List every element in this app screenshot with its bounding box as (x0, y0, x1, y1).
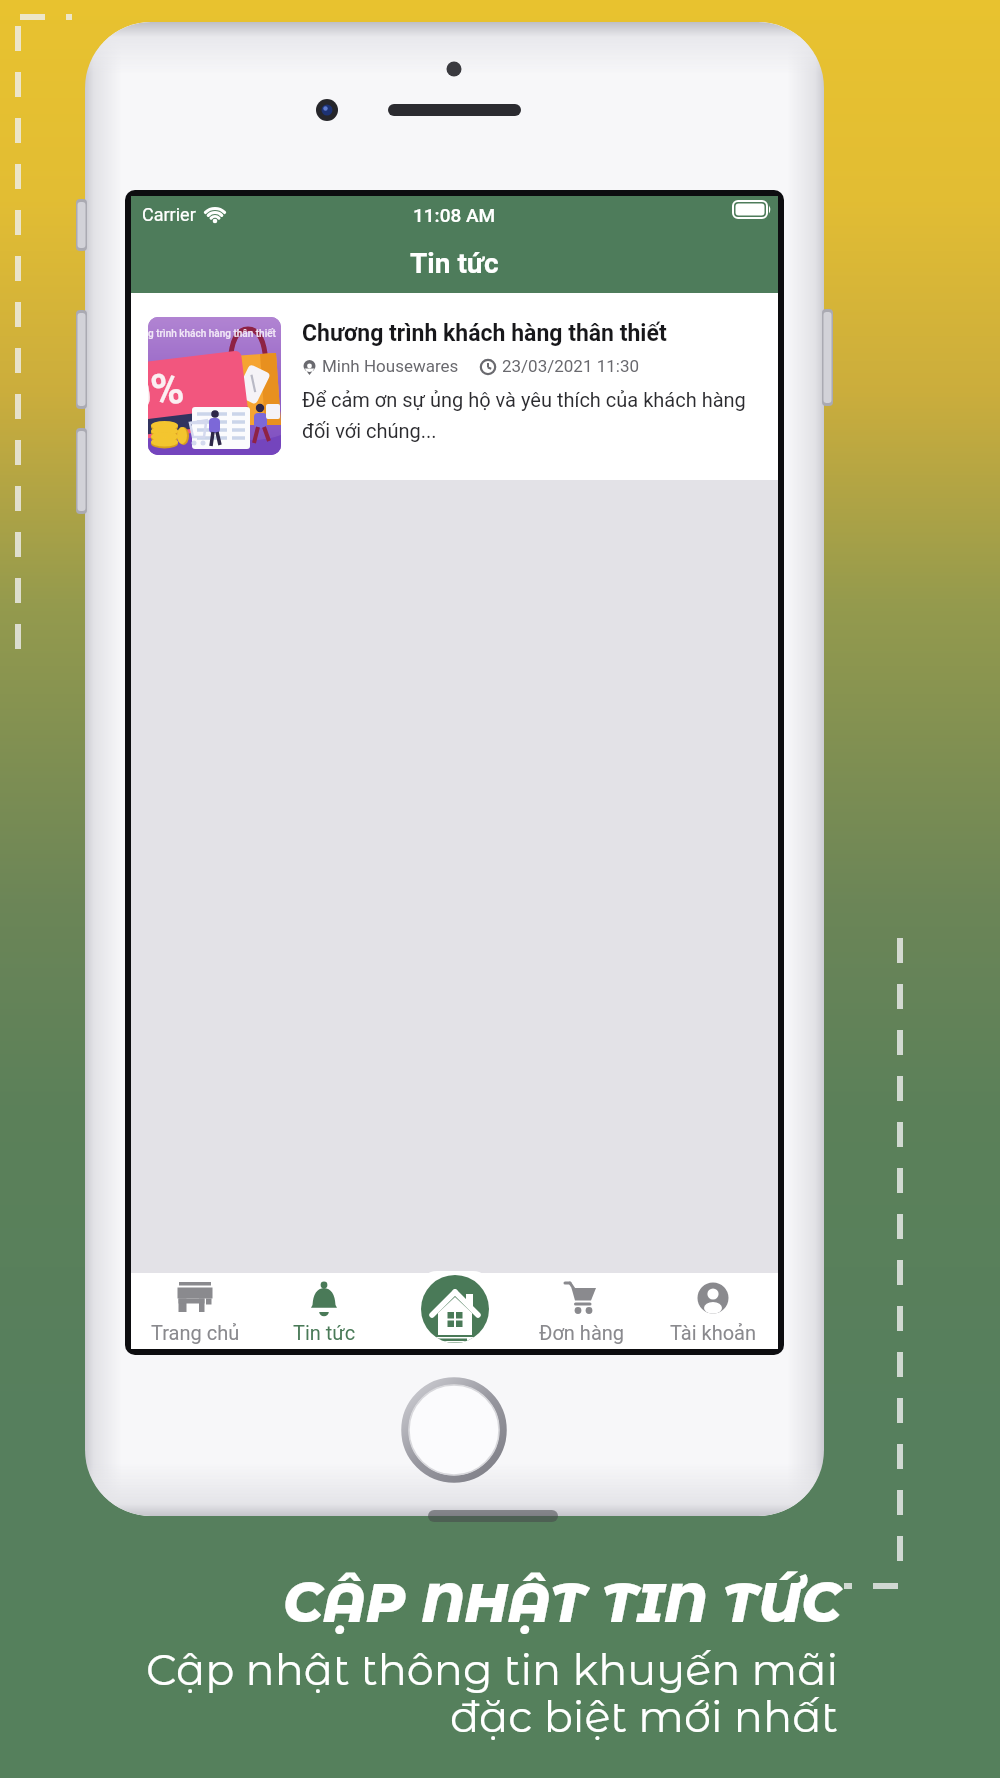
staticText: 23/03/2021 11:30 (502, 356, 640, 376)
button[interactable]: Tin tức (269, 1273, 379, 1349)
staticText: Carrier (142, 204, 196, 225)
staticText: Tin tức (293, 1321, 356, 1344)
staticText: Để cảm ơn sự ủng hộ và yêu thích của khá… (302, 388, 746, 442)
staticText: 0% (148, 361, 187, 421)
staticText: 11:08 AM (413, 204, 496, 226)
button[interactable]: Tài khoản (658, 1273, 768, 1349)
button[interactable]: g trình khách hàng thân thiết (131, 293, 778, 480)
button[interactable]: Đơn hàng (527, 1273, 637, 1349)
button[interactable] (419, 1271, 491, 1347)
staticText: CẬP NHẬT TIN TỨC (283, 1570, 841, 1636)
staticText: Tin tức (410, 247, 499, 280)
staticText: đặc biệt mới nhất (449, 1690, 838, 1742)
button[interactable]: Trang chủ (140, 1273, 250, 1349)
staticText: Cập nhật thông tin khuyến mãi (146, 1643, 838, 1695)
staticText: Tài khoản (670, 1321, 757, 1344)
staticText: Chương trình khách hàng thân thiết (302, 320, 667, 347)
staticText: Minh Housewares (322, 356, 459, 376)
staticText: g trình khách hàng thân thiết (148, 328, 276, 340)
staticText: Đơn hàng (539, 1321, 625, 1344)
staticText: Trang chủ (151, 1321, 240, 1344)
